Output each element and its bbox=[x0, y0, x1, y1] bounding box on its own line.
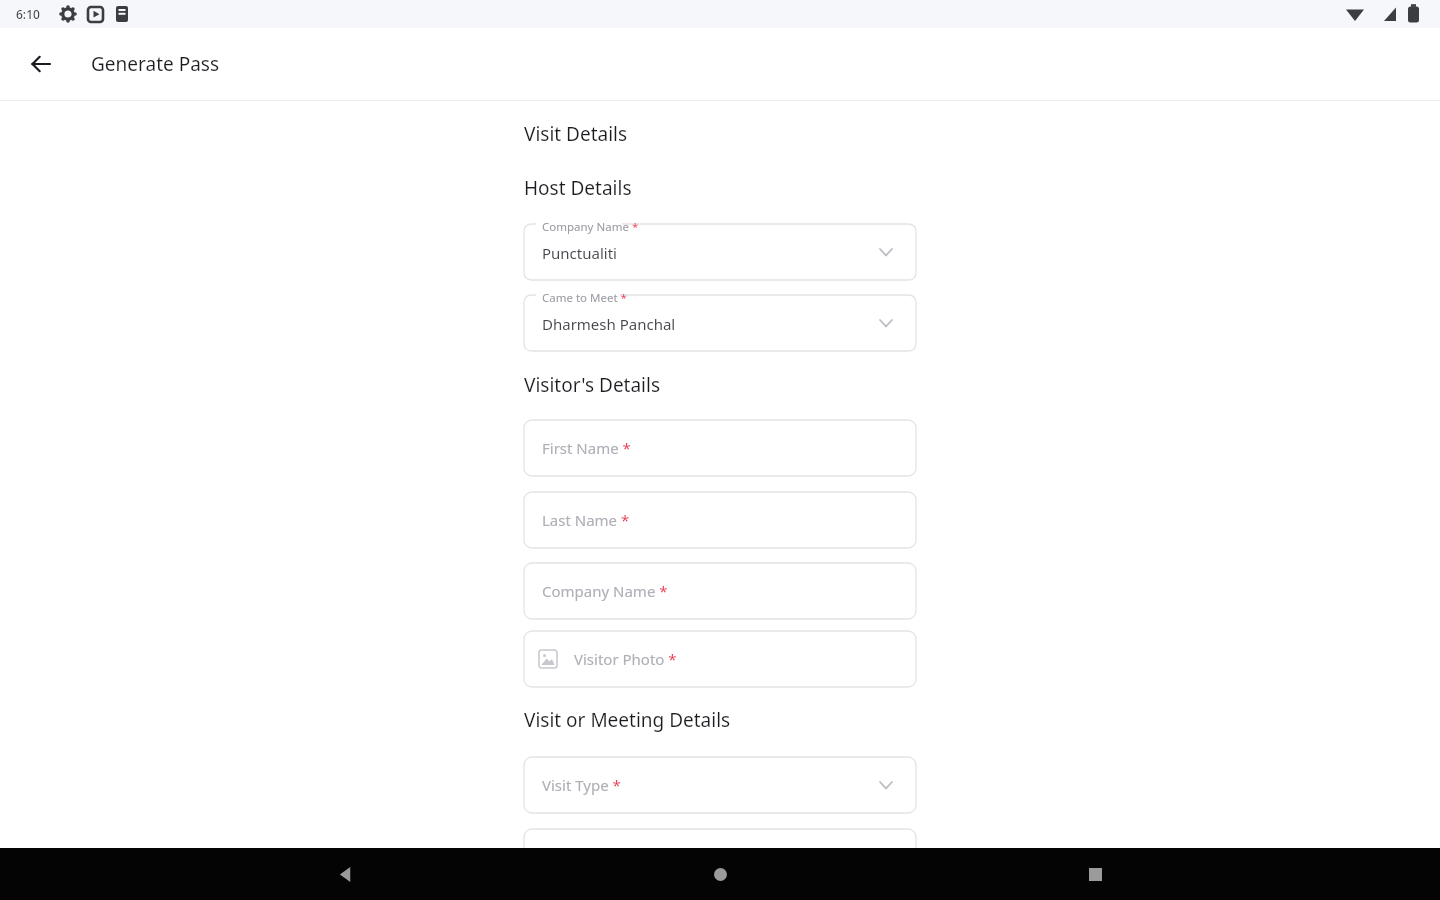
staticText: 6:10 bbox=[16, 6, 40, 22]
staticText: Company Name * bbox=[542, 219, 639, 235]
button[interactable]: Home bbox=[690, 848, 750, 900]
staticText: Punctualiti bbox=[542, 243, 617, 263]
button[interactable] bbox=[524, 631, 916, 687]
button[interactable]: Back bbox=[17, 40, 65, 88]
staticText: Company Name * bbox=[542, 581, 668, 601]
staticText: Visit or Meeting Details bbox=[524, 707, 731, 733]
button[interactable]: Back bbox=[315, 848, 375, 900]
staticText: Visit Type * bbox=[542, 775, 621, 795]
staticText: Visit Details bbox=[524, 121, 628, 147]
button[interactable] bbox=[524, 420, 916, 476]
staticText: Visitor Photo * bbox=[574, 649, 677, 669]
staticText: Last Name * bbox=[542, 510, 630, 530]
staticText: Host Details bbox=[524, 175, 632, 201]
button[interactable] bbox=[524, 563, 916, 619]
staticText: First Name * bbox=[542, 438, 631, 458]
button[interactable] bbox=[524, 757, 916, 813]
staticText: Visitor's Details bbox=[524, 372, 661, 398]
button[interactable] bbox=[524, 492, 916, 548]
button[interactable] bbox=[524, 295, 916, 351]
button[interactable]: Recent apps bbox=[1065, 848, 1125, 900]
staticText: Generate Pass bbox=[91, 51, 220, 77]
staticText: Came to Meet * bbox=[542, 290, 627, 306]
button[interactable] bbox=[524, 224, 916, 280]
staticText: Dharmesh Panchal bbox=[542, 314, 676, 334]
